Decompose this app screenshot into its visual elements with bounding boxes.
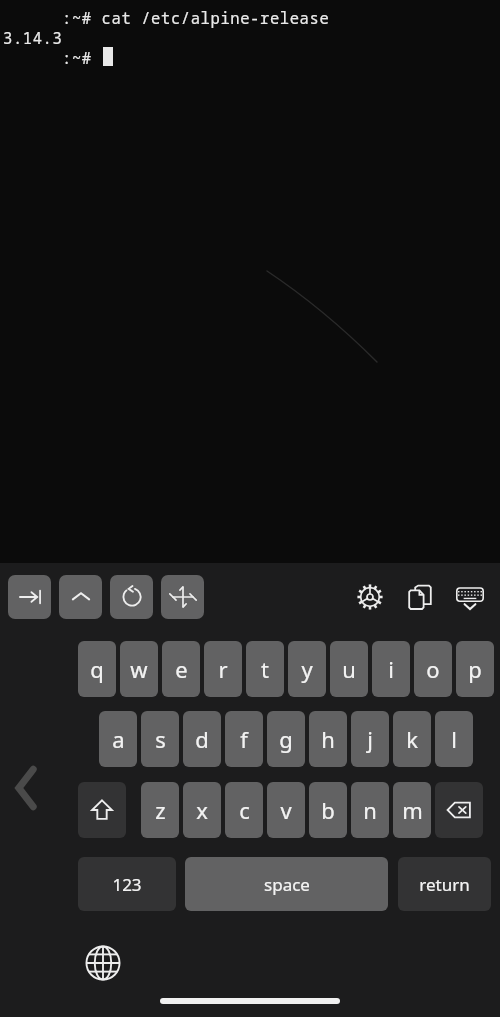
button[interactable]: o (414, 641, 452, 697)
staticText: i (388, 654, 394, 684)
button[interactable]: f (225, 711, 263, 767)
staticText: b (321, 795, 335, 825)
button[interactable]: History (110, 575, 153, 619)
staticText: :~# (62, 47, 92, 68)
staticText: e (175, 654, 188, 684)
button[interactable]: j (351, 711, 389, 767)
button[interactable]: y (288, 641, 326, 697)
staticText: l (451, 724, 457, 754)
staticText: j (367, 724, 373, 754)
button[interactable]: s (141, 711, 179, 767)
button[interactable]: m (393, 782, 431, 838)
button[interactable]: Settings (348, 575, 392, 619)
staticText: h (321, 724, 335, 754)
staticText: a (112, 724, 125, 754)
staticText: o (426, 654, 440, 684)
button[interactable]: return (398, 857, 491, 911)
button[interactable]: k (393, 711, 431, 767)
button[interactable]: Next keyboard (80, 940, 126, 986)
button[interactable]: Tab (8, 575, 51, 619)
staticText: m (402, 795, 423, 825)
button[interactable]: :~# cat /etc/alpine-release (0, 0, 500, 563)
button[interactable]: Control (59, 575, 102, 619)
button[interactable]: Hide keyboard (448, 575, 492, 619)
staticText: r (218, 654, 228, 684)
button[interactable]: Arrow keys (161, 575, 204, 619)
staticText: d (195, 724, 209, 754)
button[interactable]: Backspace (435, 782, 483, 838)
button[interactable]: Back (6, 762, 46, 814)
button[interactable]: 123 (78, 857, 176, 911)
staticText: u (342, 654, 356, 684)
staticText: y (301, 654, 313, 684)
button[interactable]: t (246, 641, 284, 697)
staticText: w (130, 654, 148, 684)
staticText: p (468, 654, 482, 684)
button[interactable]: a (99, 711, 137, 767)
button[interactable]: z (141, 782, 179, 838)
staticText: v (280, 795, 292, 825)
button[interactable]: v (267, 782, 305, 838)
staticText: 3.14.3 (3, 27, 63, 48)
staticText: z (155, 795, 166, 825)
button[interactable]: g (267, 711, 305, 767)
button[interactable]: p (456, 641, 494, 697)
staticText: n (363, 795, 377, 825)
button[interactable]: d (183, 711, 221, 767)
staticText: f (240, 724, 248, 754)
button[interactable]: x (183, 782, 221, 838)
button[interactable]: i (372, 641, 410, 697)
button[interactable]: q (78, 641, 116, 697)
staticText: x (196, 795, 208, 825)
staticText: return (419, 873, 470, 896)
button[interactable]: w (120, 641, 158, 697)
button[interactable]: u (330, 641, 368, 697)
staticText: space (264, 873, 310, 896)
button[interactable]: l (435, 711, 473, 767)
button[interactable]: c (225, 782, 263, 838)
button[interactable]: e (162, 641, 200, 697)
button[interactable]: b (309, 782, 347, 838)
staticText: s (155, 724, 166, 754)
staticText: q (90, 654, 104, 684)
button[interactable]: Paste (398, 575, 442, 619)
staticText: :~# cat /etc/alpine-release (62, 7, 330, 28)
staticText: g (279, 724, 293, 754)
staticText: t (261, 654, 269, 684)
staticText: k (406, 724, 418, 754)
button[interactable]: space (185, 857, 388, 911)
staticText: 123 (112, 873, 142, 896)
button[interactable]: h (309, 711, 347, 767)
staticText: c (239, 795, 250, 825)
button[interactable]: n (351, 782, 389, 838)
button[interactable]: r (204, 641, 242, 697)
button[interactable]: Shift (78, 782, 126, 838)
